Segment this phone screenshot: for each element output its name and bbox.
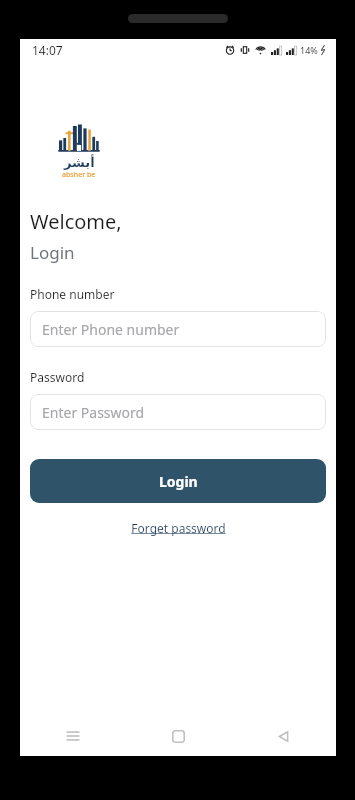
staticText: Phone number: [30, 286, 115, 302]
staticText: Login: [159, 472, 198, 491]
staticText: أبشر: [64, 155, 95, 170]
staticText: Password: [30, 369, 85, 385]
staticText: Enter Phone number: [42, 320, 180, 339]
staticText: 14:07: [32, 42, 63, 58]
button[interactable]: Enter Phone number: [30, 311, 326, 347]
button[interactable]: Back: [231, 716, 336, 756]
staticText: Login: [30, 241, 75, 264]
button[interactable]: Login: [30, 459, 326, 503]
button[interactable]: Recent apps: [20, 716, 126, 756]
staticText: Enter Password: [42, 403, 145, 422]
staticText: 14%: [300, 44, 318, 56]
staticText: Forget password: [131, 520, 226, 536]
button[interactable]: Enter Password: [30, 394, 326, 430]
button[interactable]: Home: [126, 716, 231, 756]
button[interactable]: Forget password: [125, 517, 232, 539]
staticText: Welcome,: [30, 208, 122, 235]
staticText: absher be: [62, 170, 96, 180]
